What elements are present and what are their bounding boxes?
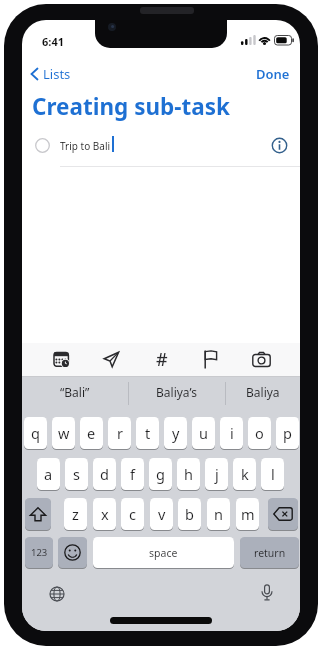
button[interactable] [53, 350, 69, 370]
staticText: k [241, 464, 249, 484]
button[interactable]: # [152, 347, 172, 371]
button[interactable]: space [93, 537, 234, 568]
staticText: f [130, 464, 135, 484]
button[interactable]: t [136, 417, 159, 449]
staticText: return [254, 546, 286, 560]
button[interactable]: Baliya’s [128, 377, 225, 406]
button[interactable]: b [178, 498, 201, 530]
staticText: c [129, 504, 136, 524]
button[interactable] [203, 350, 218, 369]
staticText: Done [256, 65, 290, 83]
staticText: v [158, 504, 166, 524]
staticText: b [185, 504, 194, 524]
staticText: Creating sub-task [32, 91, 230, 122]
staticText: # [156, 347, 168, 371]
button[interactable] [268, 498, 298, 530]
staticText: a [44, 464, 53, 484]
button[interactable]: Lists [26, 64, 86, 84]
button[interactable]: 123 [25, 537, 53, 568]
staticText: m [241, 504, 255, 524]
button[interactable]: d [93, 458, 116, 490]
staticText: z [72, 504, 79, 524]
staticText: Baliya’s [156, 384, 197, 400]
button[interactable]: z [64, 498, 87, 530]
button[interactable]: return [240, 537, 299, 568]
button[interactable]: v [150, 498, 173, 530]
button[interactable]: n [207, 498, 230, 530]
button[interactable]: Baliya [225, 377, 300, 406]
staticText: p [283, 423, 292, 443]
staticText: g [156, 464, 165, 484]
button[interactable]: g [149, 458, 172, 490]
staticText: Baliya [246, 384, 280, 400]
button[interactable]: i [220, 417, 243, 449]
staticText: q [31, 423, 40, 443]
staticText: r [117, 423, 123, 443]
button[interactable]: x [93, 498, 116, 530]
staticText: h [184, 464, 193, 484]
staticText: s [73, 464, 80, 484]
staticText: 6:41 [42, 34, 64, 49]
button[interactable]: f [121, 458, 144, 490]
button[interactable]: r [108, 417, 131, 449]
staticText: l [271, 464, 275, 484]
button[interactable]: y [164, 417, 187, 449]
staticText: t [145, 423, 151, 443]
button[interactable] [260, 584, 274, 603]
button[interactable] [271, 137, 288, 154]
button[interactable]: c [121, 498, 144, 530]
button[interactable]: Done [252, 64, 294, 84]
button[interactable]: w [52, 417, 75, 449]
button[interactable]: s [65, 458, 88, 490]
button[interactable]: k [233, 458, 256, 490]
staticText: x [101, 504, 109, 524]
button[interactable]: o [248, 417, 271, 449]
button[interactable]: “Bali” [22, 377, 128, 406]
staticText: Trip to Bali [60, 139, 111, 153]
staticText: o [255, 423, 264, 443]
button[interactable] [25, 498, 51, 530]
staticText: w [58, 423, 70, 443]
button[interactable]: Trip to Bali [22, 130, 300, 166]
staticText: space [149, 546, 178, 560]
staticText: 123 [31, 546, 48, 559]
button[interactable]: q [24, 417, 47, 449]
button[interactable]: u [192, 417, 215, 449]
staticText: e [87, 423, 96, 443]
button[interactable]: j [205, 458, 228, 490]
staticText: u [199, 423, 208, 443]
staticText: d [100, 464, 109, 484]
staticText: n [214, 504, 223, 524]
button[interactable]: h [177, 458, 200, 490]
staticText: Lists [43, 65, 71, 83]
button[interactable]: e [80, 417, 103, 449]
button[interactable]: p [276, 417, 299, 449]
button[interactable] [58, 537, 87, 568]
button[interactable]: l [261, 458, 284, 490]
staticText: j [215, 464, 219, 484]
staticText: y [172, 423, 180, 443]
staticText: i [230, 423, 234, 443]
button[interactable]: a [37, 458, 60, 490]
button[interactable] [252, 352, 271, 367]
staticText: “Bali” [60, 384, 90, 400]
button[interactable] [103, 351, 120, 368]
button[interactable] [49, 586, 65, 602]
button[interactable]: m [236, 498, 259, 530]
